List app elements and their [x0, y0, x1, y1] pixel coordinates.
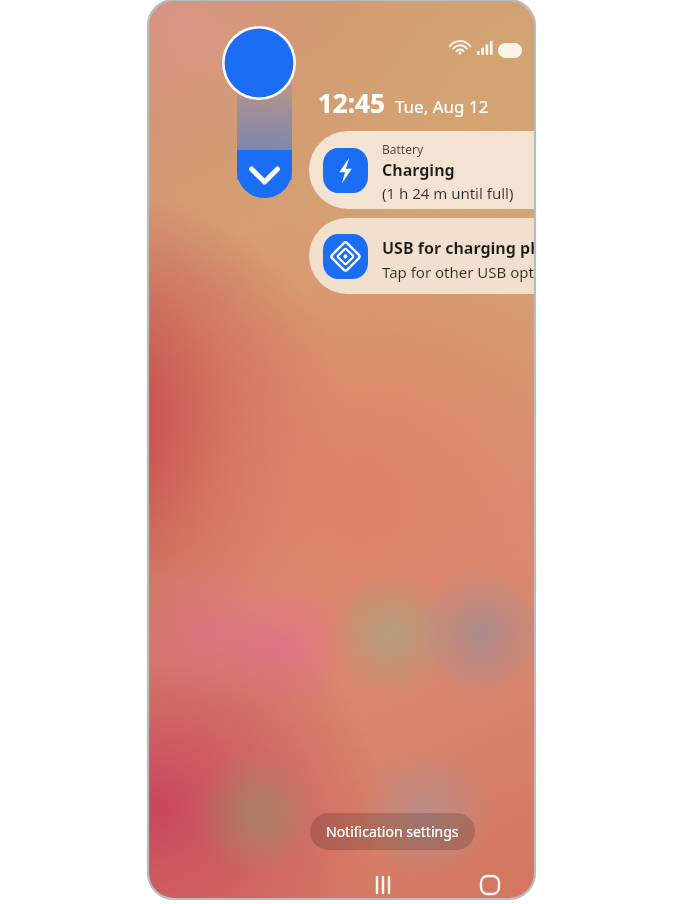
- staticText: Tap for other USB options.: [382, 262, 535, 282]
- button[interactable]: Notification settings: [310, 813, 475, 850]
- button[interactable]: Home: [467, 862, 513, 899]
- staticText: Charging: [382, 159, 455, 181]
- staticText: Tue, Aug 12: [395, 95, 489, 118]
- staticText: (1 h 24 m until full): [382, 183, 514, 203]
- button[interactable]: Recent apps: [360, 862, 406, 899]
- staticText: USB for charging phone: [382, 237, 535, 259]
- staticText: Notification settings: [326, 822, 459, 841]
- staticText: 12:45: [318, 85, 385, 120]
- button[interactable]: Battery: [309, 131, 535, 209]
- button[interactable]: USB for charging phone: [309, 218, 535, 294]
- staticText: Battery: [382, 141, 424, 157]
